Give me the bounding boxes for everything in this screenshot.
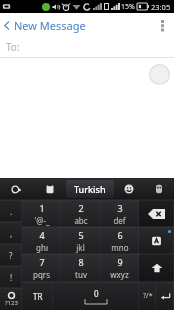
button[interactable]: 4: [22, 227, 61, 254]
button[interactable]: Clipboard: [33, 178, 66, 200]
staticText: def: [113, 215, 126, 226]
staticText: 1: [39, 202, 45, 214]
button[interactable]: 6: [100, 227, 139, 254]
staticText: jkl: [76, 242, 85, 253]
button[interactable]: Keyboard settings: [0, 178, 33, 200]
staticText: To:: [6, 40, 20, 54]
button[interactable]: Turkish: [66, 180, 114, 198]
staticText: wxyz: [110, 269, 129, 280]
button[interactable]: To:: [0, 37, 174, 57]
staticText: 6: [117, 229, 123, 241]
staticText: New Message: [14, 18, 86, 33]
button[interactable]: 5: [61, 227, 100, 254]
button[interactable]: ?/*: [139, 282, 156, 310]
staticText: ,: [10, 228, 13, 239]
button[interactable]: New Message: [0, 13, 90, 37]
staticText: ?/*: [143, 291, 153, 301]
button[interactable]: Emoji: [114, 178, 144, 200]
staticText: 23:05: [151, 2, 171, 12]
button[interactable]: ?: [0, 244, 22, 266]
button[interactable]: 3: [100, 200, 139, 227]
staticText: ?: [9, 250, 13, 261]
staticText: 9: [117, 256, 123, 268]
staticText: 8: [78, 256, 84, 268]
button[interactable]: 2: [61, 200, 100, 227]
staticText: mno: [111, 242, 129, 253]
button[interactable]: Symbols: [0, 288, 22, 310]
button[interactable]: Language mode: [139, 227, 174, 254]
staticText: 3: [117, 202, 123, 214]
button[interactable]: Space: [53, 282, 139, 310]
staticText: TR: [33, 291, 43, 302]
staticText: Turkish: [74, 183, 106, 195]
staticText: '@-_: [34, 215, 50, 226]
button[interactable]: 9: [100, 254, 139, 282]
staticText: ghı: [36, 242, 48, 253]
staticText: 15%: [121, 2, 135, 12]
staticText: 4: [39, 229, 45, 241]
button[interactable]: Backspace: [139, 200, 174, 227]
button[interactable]: 8: [61, 254, 100, 282]
staticText: 7: [39, 256, 45, 268]
button[interactable]: Add recipient: [149, 64, 170, 85]
button[interactable]: 7: [22, 254, 61, 282]
button[interactable]: .: [0, 200, 22, 222]
staticText: !: [10, 272, 13, 283]
button[interactable]: Shift: [139, 254, 174, 282]
button[interactable]: More options: [150, 13, 174, 37]
button[interactable]: Enter: [156, 282, 174, 310]
staticText: 5: [78, 229, 84, 241]
staticText: ?123: [5, 299, 18, 307]
button[interactable]: Voice input: [144, 178, 174, 200]
staticText: 2: [78, 202, 84, 214]
staticText: .: [10, 206, 13, 217]
button[interactable]: 1: [22, 200, 61, 227]
staticText: pqrs: [33, 269, 50, 280]
button[interactable]: !: [0, 266, 22, 288]
button[interactable]: ,: [0, 222, 22, 244]
staticText: 0: [94, 288, 99, 299]
button[interactable]: TR: [22, 282, 53, 310]
staticText: abc: [74, 215, 88, 226]
staticText: tuv: [75, 269, 87, 280]
